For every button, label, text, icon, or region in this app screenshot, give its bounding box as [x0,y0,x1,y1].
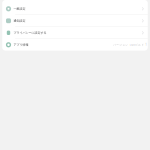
button[interactable]: プライバシーに設定する [2,27,148,39]
button[interactable]: アプリ情報 [2,39,148,51]
staticText: プライバシーに設定する [13,31,46,35]
staticText: 一般設定 [13,7,25,11]
staticText: アプリ情報 [13,43,28,47]
staticText: 通知設定 [13,19,25,23]
staticText: バージョン 1.0.0 ビルド 1 [113,43,146,46]
button[interactable]: 一般設定 [2,3,148,15]
button[interactable]: 通知設定 [2,15,148,27]
